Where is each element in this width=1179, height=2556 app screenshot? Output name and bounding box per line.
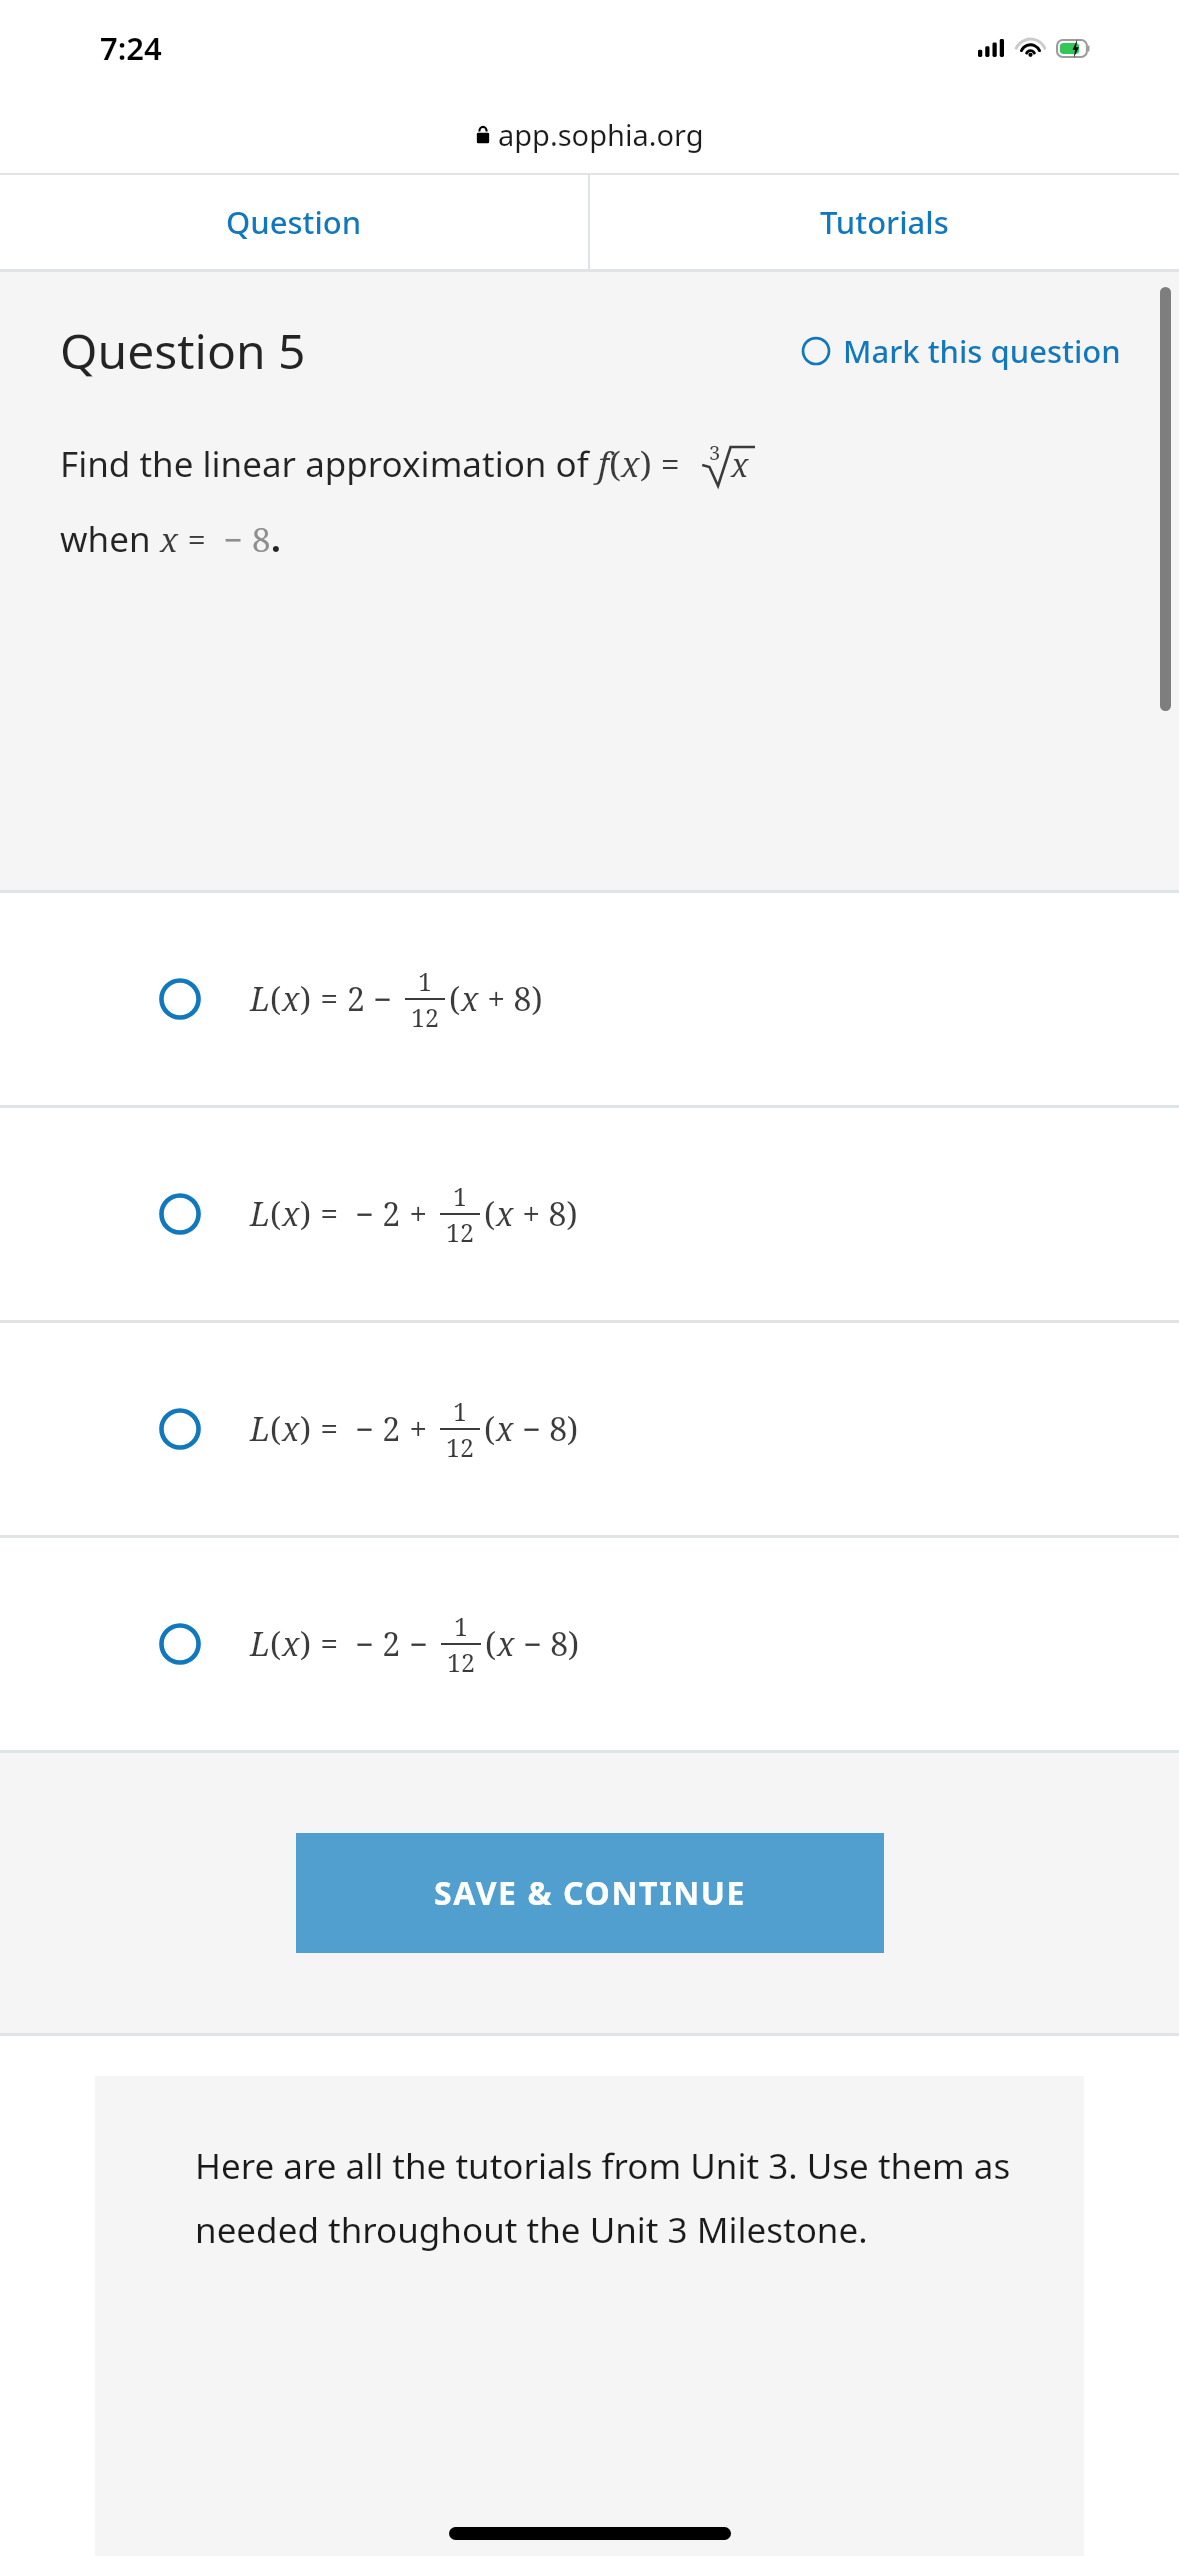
staticText: L: [250, 1622, 270, 1666]
staticText: − 2: [347, 1407, 401, 1451]
staticText: f: [598, 441, 609, 487]
staticText: (: [484, 1407, 496, 1451]
staticText: − 8): [514, 1407, 579, 1451]
staticText: L: [250, 977, 270, 1021]
staticText: + 8): [479, 977, 543, 1021]
staticText: x: [282, 1192, 300, 1236]
staticText: −: [401, 1622, 437, 1666]
staticText: x: [160, 517, 179, 562]
staticText: 1: [454, 1609, 468, 1643]
staticText: 12: [447, 1645, 475, 1679]
staticText: .: [271, 515, 281, 563]
staticText: Tutorials: [820, 201, 949, 243]
staticText: −: [365, 977, 401, 1021]
staticText: Question: [226, 201, 362, 243]
staticText: +: [401, 1407, 436, 1451]
staticText: L: [250, 1407, 270, 1451]
staticText: ): [640, 441, 652, 487]
staticText: x: [496, 1192, 514, 1236]
staticText: x: [731, 443, 749, 487]
staticText: (: [484, 1192, 496, 1236]
staticText: ): [300, 977, 312, 1021]
staticText: (: [270, 1192, 282, 1236]
staticText: =: [312, 1407, 347, 1451]
button[interactable]: L: [0, 1323, 1179, 1535]
staticText: +: [401, 1192, 436, 1236]
staticText: app.sophia.org: [498, 115, 704, 154]
staticText: =: [652, 441, 689, 487]
staticText: −: [215, 517, 252, 562]
staticText: 1: [418, 964, 432, 998]
staticText: 7:24: [100, 27, 162, 69]
staticText: =: [179, 517, 215, 562]
staticText: 3: [709, 439, 721, 466]
button[interactable]: SAVE & CONTINUE: [296, 1833, 884, 1953]
staticText: (: [270, 1622, 282, 1666]
button[interactable]: L: [0, 1538, 1179, 1750]
staticText: =: [312, 1622, 347, 1666]
staticText: (: [609, 441, 621, 487]
staticText: Mark this question: [843, 330, 1121, 372]
staticText: 12: [446, 1215, 474, 1249]
staticText: − 2: [347, 1192, 401, 1236]
staticText: Here are all the tutorials from Unit 3. …: [195, 2142, 1054, 2253]
staticText: when: [60, 515, 160, 563]
staticText: x: [282, 977, 300, 1021]
staticText: 2: [347, 977, 365, 1021]
staticText: L: [250, 1192, 270, 1236]
staticText: (: [485, 1622, 497, 1666]
staticText: =: [312, 977, 347, 1021]
button[interactable]: L: [0, 1108, 1179, 1320]
staticText: x: [621, 441, 640, 487]
staticText: 12: [411, 1000, 439, 1034]
staticText: ): [300, 1192, 312, 1236]
staticText: SAVE & CONTINUE: [434, 1871, 747, 1915]
staticText: x: [496, 1407, 514, 1451]
staticText: 1: [453, 1179, 467, 1213]
staticText: − 8): [515, 1622, 580, 1666]
staticText: (: [270, 977, 282, 1021]
staticText: + 8): [514, 1192, 578, 1236]
staticText: 1: [453, 1394, 467, 1428]
staticText: − 2: [347, 1622, 401, 1666]
staticText: x: [282, 1622, 300, 1666]
staticText: x: [497, 1622, 515, 1666]
button[interactable]: Tutorials: [590, 175, 1179, 269]
staticText: x: [461, 977, 479, 1021]
button[interactable]: Question: [0, 175, 588, 269]
staticText: ): [300, 1407, 312, 1451]
staticText: Find the linear approximation of: [60, 440, 598, 488]
staticText: =: [312, 1192, 347, 1236]
staticText: (: [449, 977, 461, 1021]
staticText: 8: [252, 517, 271, 562]
staticText: (: [270, 1407, 282, 1451]
button[interactable]: Mark this question: [801, 330, 1121, 372]
staticText: Question 5: [60, 318, 306, 383]
staticText: x: [282, 1407, 300, 1451]
staticText: ): [300, 1622, 312, 1666]
staticText: 12: [446, 1430, 474, 1464]
button[interactable]: L: [0, 893, 1179, 1105]
